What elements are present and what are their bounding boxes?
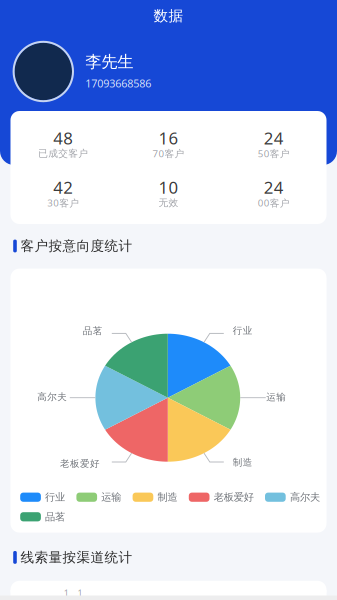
staticText: 17093668586 xyxy=(85,76,151,91)
button[interactable]: 李先生 xyxy=(0,0,337,61)
staticText: 行业 xyxy=(233,324,253,336)
staticText: 李先生 xyxy=(85,51,133,72)
staticText: 42 xyxy=(53,176,73,199)
staticText: 制造 xyxy=(233,456,253,468)
staticText: 运输 xyxy=(101,491,121,504)
staticText: 运输 xyxy=(266,391,286,403)
staticText: 24 xyxy=(264,176,284,199)
staticText: 24 xyxy=(264,126,284,149)
staticText: 老板爱好 xyxy=(214,491,254,504)
staticText: 48 xyxy=(53,126,73,149)
staticText: 制造 xyxy=(157,491,177,504)
staticText: 30客户 xyxy=(47,196,79,209)
staticText: 00客户 xyxy=(258,196,290,209)
staticText: 客户按意向度统计 xyxy=(20,237,132,254)
staticText: 1 xyxy=(77,587,82,599)
staticText: 10 xyxy=(158,176,178,199)
staticText: 品茗 xyxy=(83,325,103,337)
staticText: 数据 xyxy=(153,7,183,25)
staticText: 线索量按渠道统计 xyxy=(20,549,132,566)
staticText: 50客户 xyxy=(258,147,290,160)
staticText: 70客户 xyxy=(152,147,184,160)
staticText: 16 xyxy=(158,126,178,149)
staticText: 老板爱好 xyxy=(60,457,100,469)
staticText: 高尔夫 xyxy=(37,391,67,403)
staticText: 行业 xyxy=(45,491,65,504)
staticText: 已成交客户 xyxy=(38,147,88,159)
staticText: 品茗 xyxy=(45,510,65,523)
staticText: 高尔夫 xyxy=(290,491,320,504)
staticText: 无效 xyxy=(158,197,178,209)
staticText: 1 xyxy=(64,587,69,599)
